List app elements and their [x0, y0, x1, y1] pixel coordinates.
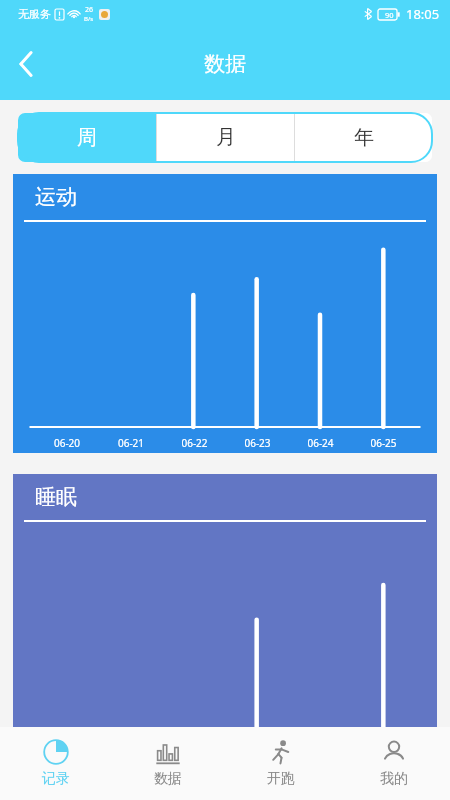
button[interactable]: 记录	[0, 727, 112, 800]
staticText: 06-20	[35, 436, 99, 450]
button[interactable]: 月	[157, 113, 294, 162]
button[interactable]: 我的	[337, 727, 450, 800]
staticText: 06-21	[99, 436, 163, 450]
button[interactable]: 开跑	[224, 727, 337, 800]
staticText: 26	[85, 5, 94, 15]
staticText: 90	[385, 10, 394, 20]
staticText: 无服务	[18, 7, 51, 21]
staticText: 周	[77, 125, 97, 150]
staticText: 我的	[380, 770, 408, 788]
button[interactable]: Back	[4, 42, 48, 86]
staticText: 月	[216, 125, 236, 150]
staticText: 06-23	[226, 436, 289, 450]
staticText: 年	[354, 125, 374, 150]
staticText: 开跑	[267, 770, 295, 788]
button[interactable]: 周	[18, 113, 156, 162]
staticText: 数据	[204, 51, 246, 77]
staticText: 运动	[35, 184, 77, 210]
button[interactable]: 睡眠	[13, 474, 437, 734]
staticText: 睡眠	[35, 484, 77, 510]
button[interactable]: 运动	[13, 174, 437, 453]
staticText: B/s	[84, 15, 94, 23]
staticText: 记录	[42, 770, 70, 788]
button[interactable]: 数据	[112, 727, 224, 800]
staticText: 18:05	[406, 5, 440, 23]
staticText: 数据	[154, 770, 182, 788]
staticText: 06-25	[352, 436, 415, 450]
staticText: 06-24	[289, 436, 352, 450]
staticText: 06-22	[163, 436, 226, 450]
button[interactable]: 年	[295, 113, 432, 162]
